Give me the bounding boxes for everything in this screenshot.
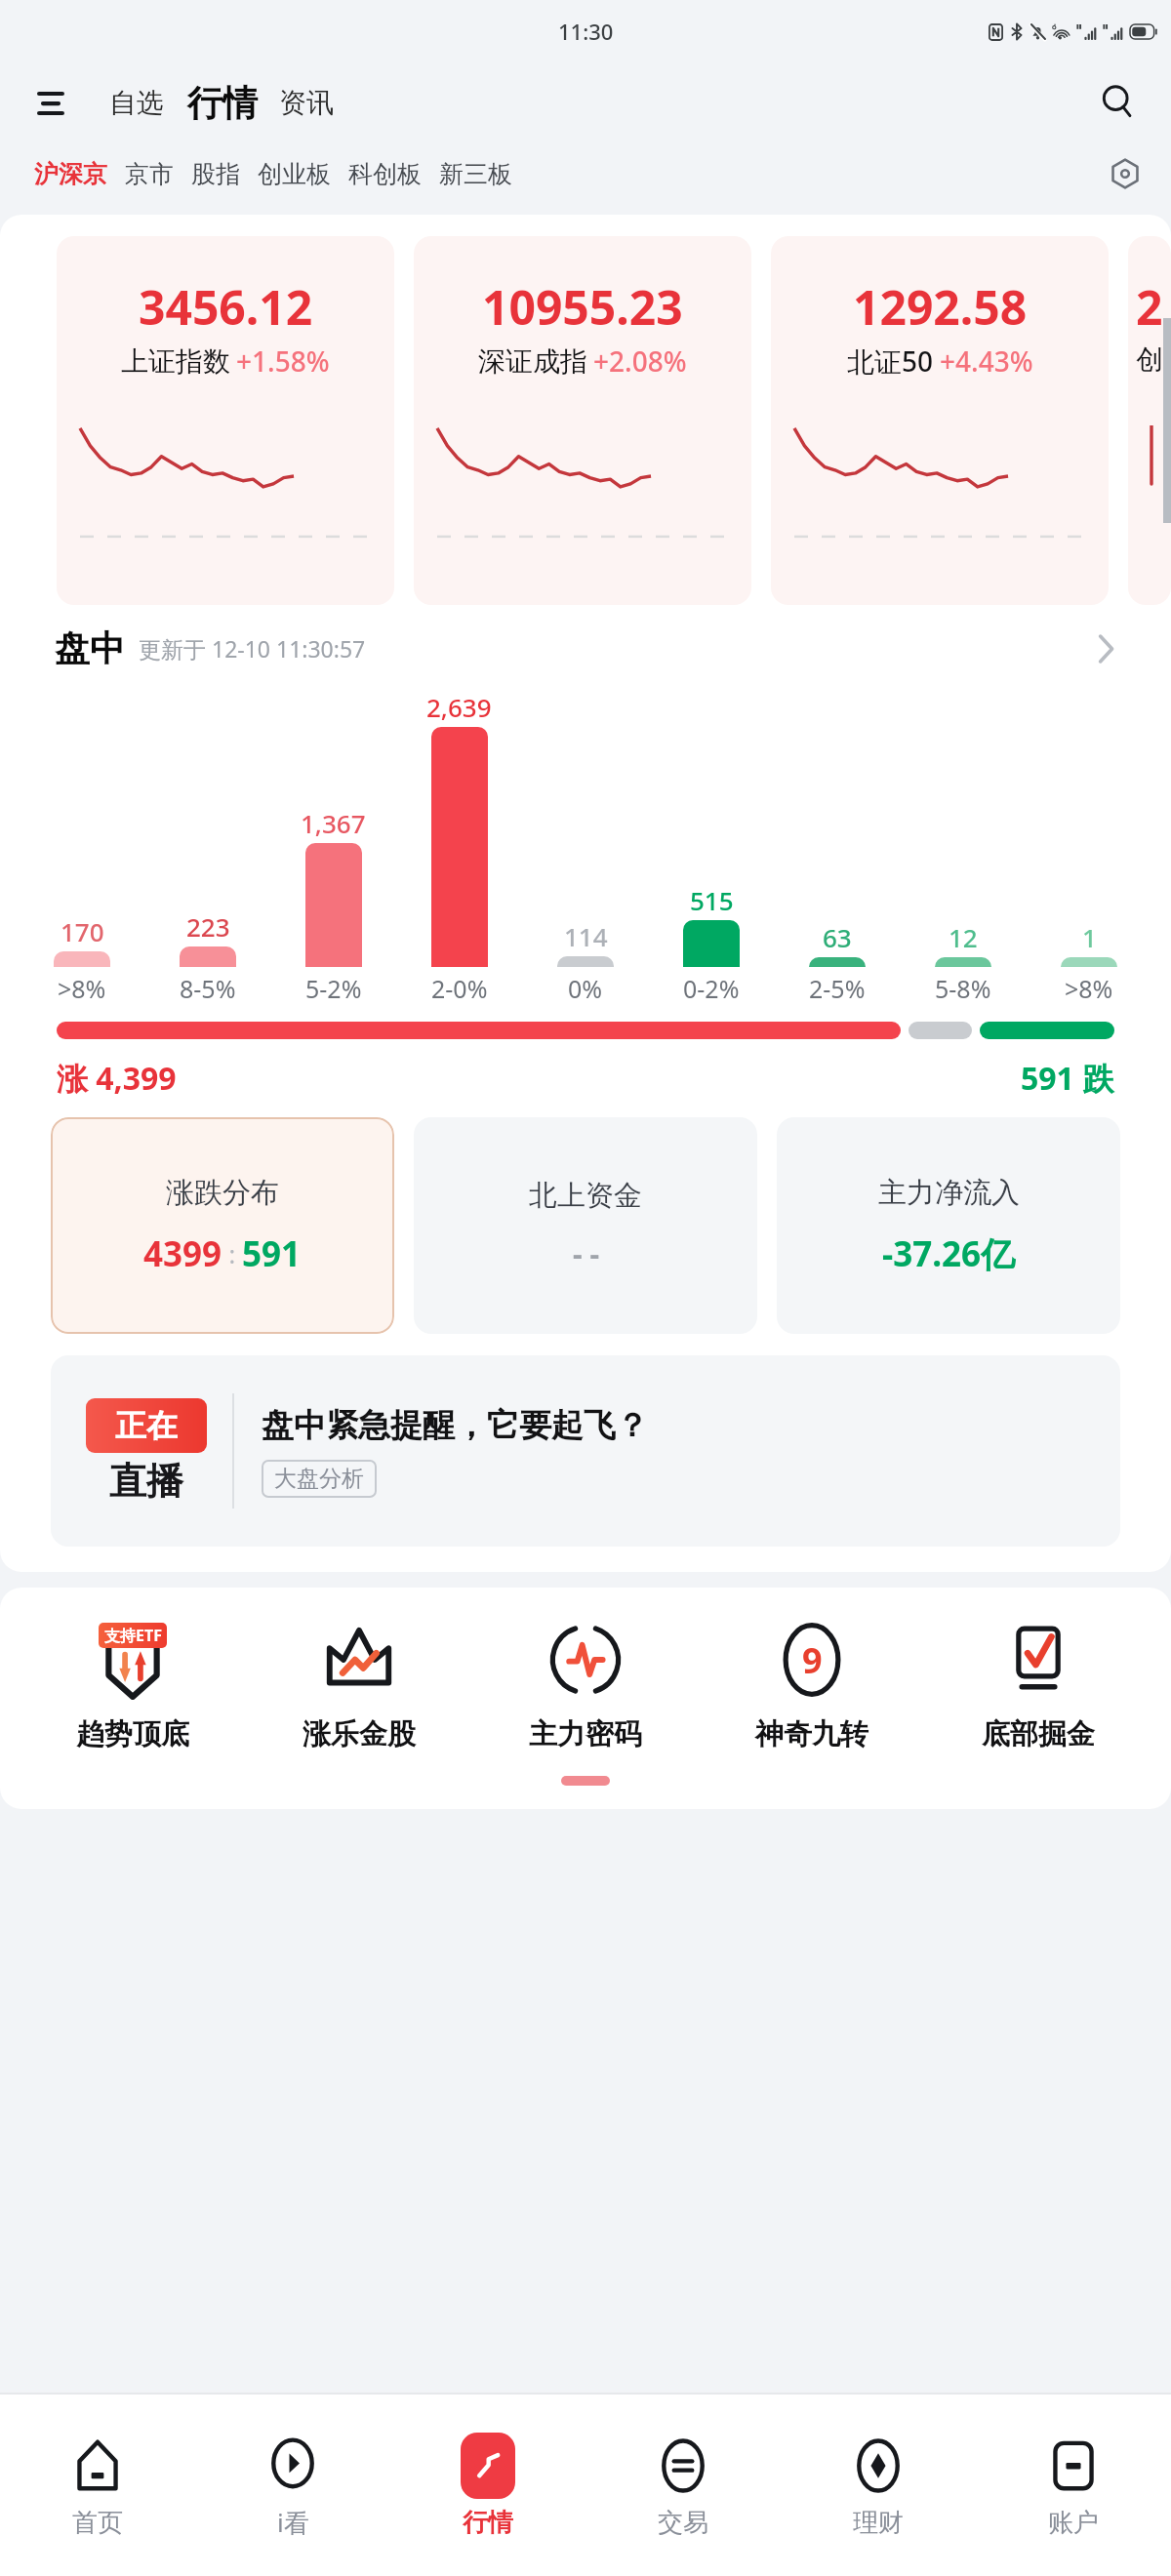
button[interactable]: 1292.58 bbox=[771, 236, 1109, 605]
staticText: 11:30 bbox=[558, 17, 614, 46]
staticText: 底部掘金 bbox=[982, 1716, 1095, 1752]
staticText: 行情 bbox=[187, 81, 258, 125]
staticText: 主力密码 bbox=[529, 1716, 642, 1752]
staticText: 8-5% bbox=[180, 972, 236, 1004]
staticText: 沪深京 bbox=[34, 159, 107, 189]
button[interactable]: 沪深京 bbox=[25, 151, 116, 197]
staticText: 1 bbox=[1082, 920, 1097, 954]
staticText: 神奇九转 bbox=[755, 1716, 868, 1752]
button[interactable]: 涨乐金股 bbox=[246, 1615, 472, 1752]
staticText: -37.26亿 bbox=[882, 1230, 1016, 1277]
staticText: 591 跌 bbox=[1021, 1057, 1114, 1100]
button[interactable]: 盘中 bbox=[55, 626, 1116, 670]
staticText: 创业板 bbox=[258, 159, 331, 189]
button[interactable]: 主力净流入 bbox=[777, 1117, 1120, 1334]
staticText: 直播 bbox=[109, 1458, 183, 1505]
staticText: 上证指数 bbox=[121, 344, 230, 379]
button[interactable]: Filter settings bbox=[1101, 149, 1150, 198]
button[interactable]: 创业板 bbox=[249, 151, 340, 197]
button[interactable]: 首页 bbox=[0, 2395, 195, 2576]
staticText: 114 bbox=[564, 919, 608, 953]
button[interactable]: 资讯 bbox=[275, 82, 338, 124]
staticText: 2-5% bbox=[809, 972, 866, 1004]
staticText: 北证50 bbox=[847, 342, 934, 380]
button[interactable]: 新三板 bbox=[430, 151, 521, 197]
staticText: 2 bbox=[1136, 275, 1163, 339]
staticText: 主力净流入 bbox=[878, 1175, 1020, 1211]
staticText: 支持ETF bbox=[104, 1625, 162, 1646]
staticText: 深证成指 bbox=[478, 344, 587, 379]
staticText: 63 bbox=[823, 920, 852, 954]
staticText: 1,367 bbox=[301, 806, 366, 840]
button[interactable]: 科创板 bbox=[340, 151, 430, 197]
staticText: 大盘分析 bbox=[274, 1465, 364, 1493]
staticText: 新三板 bbox=[439, 159, 512, 189]
staticText: 北上资金 bbox=[529, 1178, 642, 1214]
button[interactable]: 支持ETF bbox=[20, 1615, 246, 1752]
staticText: 科创板 bbox=[348, 159, 422, 189]
button[interactable]: 账户 bbox=[976, 2395, 1171, 2576]
button[interactable]: Search bbox=[1089, 74, 1146, 131]
button[interactable]: Menu bbox=[27, 80, 74, 127]
staticText: - - bbox=[573, 1233, 599, 1273]
staticText: +1.58% bbox=[236, 342, 330, 380]
staticText: 5-2% bbox=[305, 972, 362, 1004]
staticText: 趋势顶底 bbox=[76, 1716, 189, 1752]
staticText: +4.43% bbox=[940, 342, 1033, 380]
staticText: 5-8% bbox=[935, 972, 991, 1004]
button[interactable]: 行情 bbox=[390, 2395, 585, 2576]
button[interactable]: 股指 bbox=[182, 151, 249, 197]
button[interactable]: 底部掘金 bbox=[925, 1615, 1151, 1752]
staticText: 4399 bbox=[143, 1230, 222, 1277]
staticText: 0-2% bbox=[683, 972, 740, 1004]
staticText: 223 bbox=[186, 909, 230, 944]
staticText: 591 bbox=[242, 1230, 302, 1277]
staticText: 12 bbox=[949, 920, 978, 954]
button[interactable]: 理财 bbox=[781, 2395, 976, 2576]
staticText: 正在 bbox=[115, 1406, 178, 1445]
staticText: 0% bbox=[568, 972, 603, 1004]
staticText: 更新于 12-10 11:30:57 bbox=[139, 633, 366, 664]
staticText: 自选 bbox=[109, 86, 164, 120]
staticText: : bbox=[222, 1237, 242, 1270]
staticText: 9 bbox=[802, 1636, 823, 1684]
staticText: 行情 bbox=[463, 2507, 513, 2539]
staticText: 1292.58 bbox=[853, 275, 1028, 339]
button[interactable]: 主力密码 bbox=[472, 1615, 699, 1752]
button[interactable]: 京市 bbox=[116, 151, 182, 197]
staticText: >8% bbox=[1065, 972, 1113, 1004]
staticText: 涨 4,399 bbox=[57, 1057, 177, 1100]
staticText: i看 bbox=[277, 2505, 309, 2540]
staticText: 涨跌分布 bbox=[166, 1175, 279, 1211]
staticText: >8% bbox=[58, 972, 106, 1004]
staticText: 515 bbox=[690, 883, 734, 917]
staticText: 10955.23 bbox=[482, 275, 683, 339]
button[interactable]: 行情 bbox=[185, 79, 260, 127]
staticText: 股指 bbox=[191, 159, 240, 189]
button[interactable]: 正在 bbox=[51, 1355, 1120, 1547]
staticText: 2-0% bbox=[431, 972, 488, 1004]
button[interactable]: 涨跌分布 bbox=[51, 1117, 394, 1334]
staticText: 理财 bbox=[853, 2507, 904, 2539]
staticText: 交易 bbox=[658, 2507, 708, 2539]
button[interactable]: 自选 bbox=[105, 82, 168, 124]
button[interactable]: i看 bbox=[195, 2395, 390, 2576]
button[interactable]: 2 bbox=[1128, 236, 1171, 605]
staticText: 账户 bbox=[1048, 2507, 1099, 2539]
staticText: +2.08% bbox=[593, 342, 687, 380]
button[interactable]: 3456.12 bbox=[57, 236, 394, 605]
staticText: 2,639 bbox=[426, 690, 492, 724]
staticText: 首页 bbox=[72, 2507, 123, 2539]
button[interactable]: 10955.23 bbox=[414, 236, 751, 605]
staticText: 创 bbox=[1136, 342, 1163, 377]
button[interactable]: 交易 bbox=[585, 2395, 781, 2576]
button[interactable]: 9 bbox=[699, 1615, 925, 1752]
staticText: 170 bbox=[61, 914, 104, 948]
staticText: 盘中 bbox=[55, 626, 125, 670]
staticText: 3456.12 bbox=[139, 275, 313, 339]
staticText: 资讯 bbox=[279, 86, 334, 120]
staticText: 涨乐金股 bbox=[303, 1716, 416, 1752]
button[interactable]: 北上资金 bbox=[414, 1117, 757, 1334]
staticText: 京市 bbox=[125, 159, 174, 189]
staticText: 盘中紧急提醒，它要起飞？ bbox=[262, 1405, 648, 1446]
